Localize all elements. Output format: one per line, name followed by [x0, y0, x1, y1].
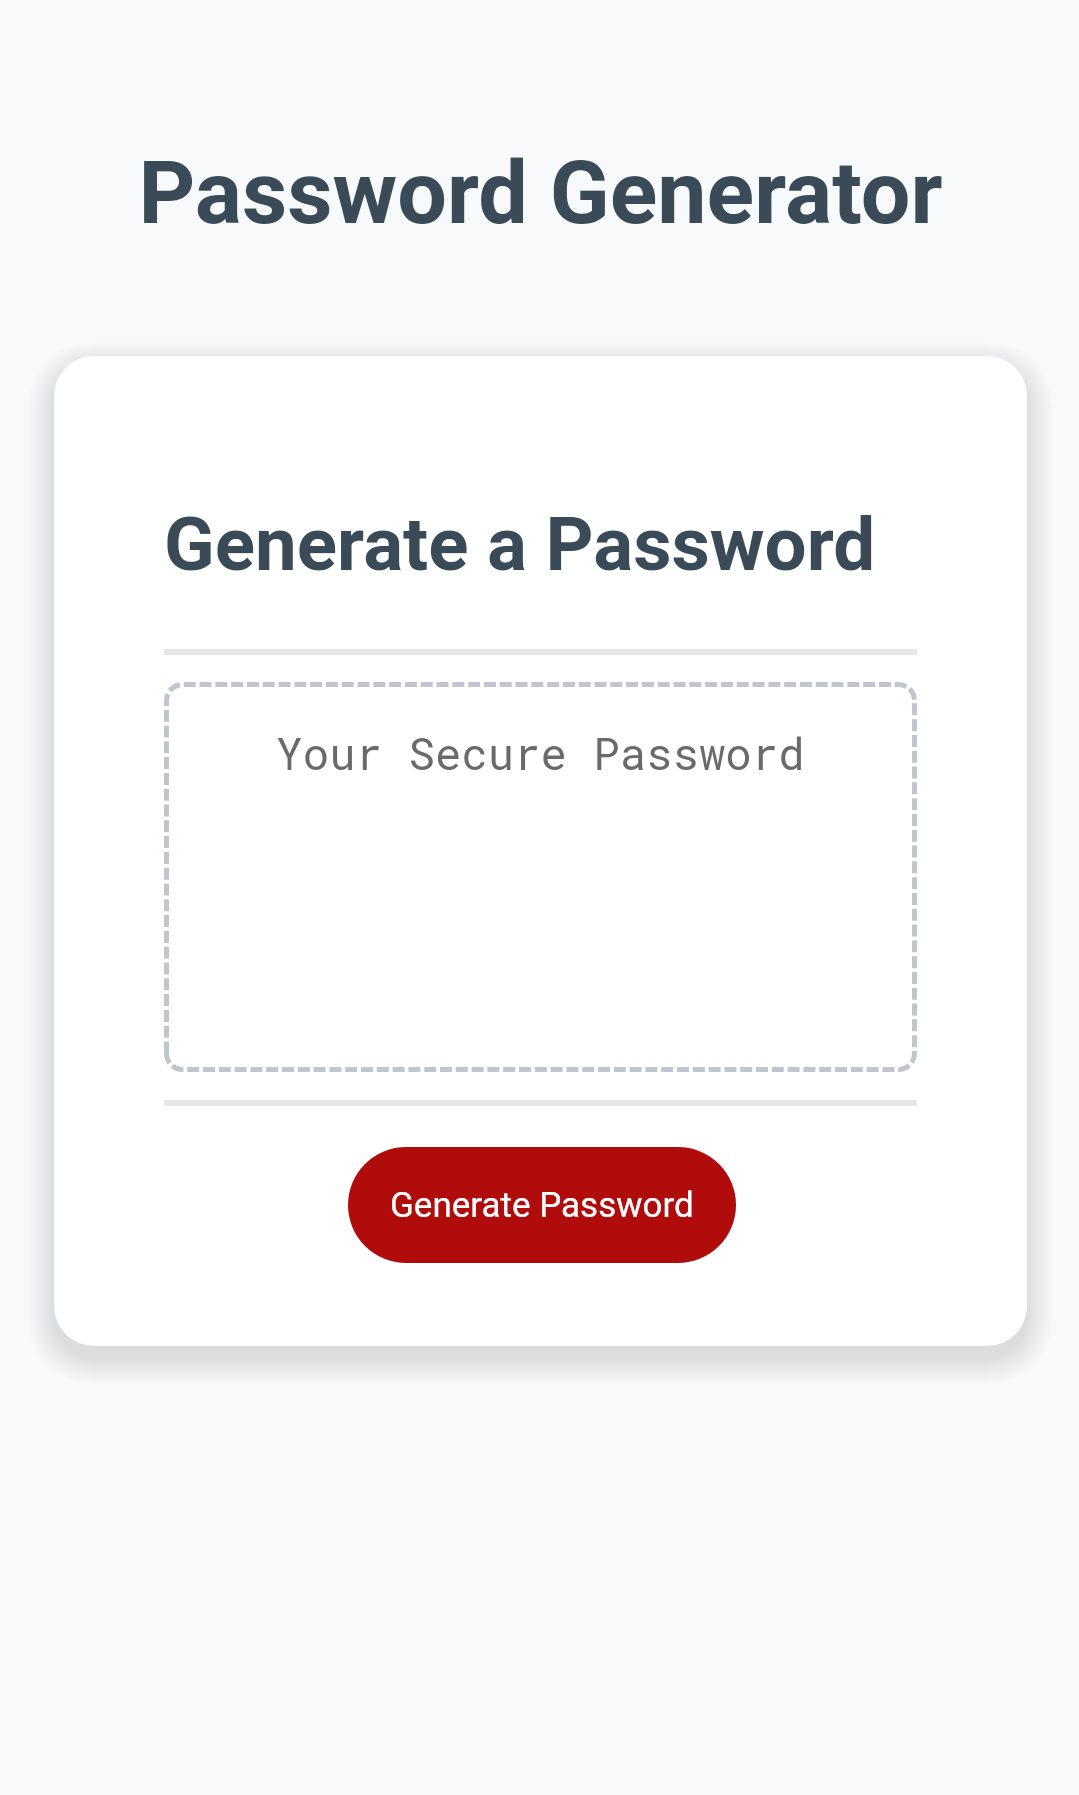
button[interactable]: Generated password output field [164, 682, 917, 1072]
staticText: Password Generator [1, 141, 1079, 244]
staticText: Generate a Password [164, 501, 876, 588]
staticText: Generate Password [390, 1185, 694, 1226]
button[interactable]: Generate Password [348, 1147, 736, 1263]
staticText: Your Secure Password [164, 724, 917, 782]
